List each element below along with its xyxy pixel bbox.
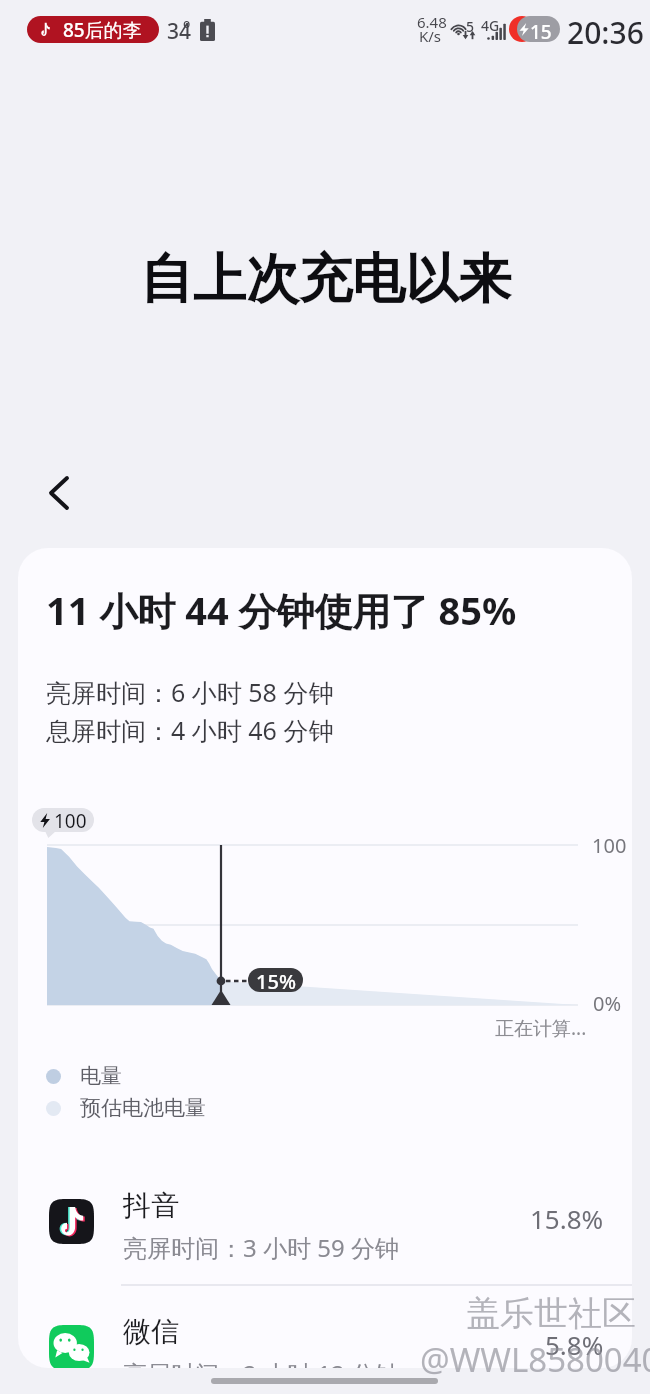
staticText: 亮屏时间：2 小时 12 分钟 (123, 1357, 399, 1368)
staticText: 11 小时 44 分钟使用了 85% (46, 584, 517, 636)
staticText: 15% (256, 968, 296, 992)
staticText: 抖音 (123, 1188, 179, 1223)
staticText: K/s (419, 26, 442, 46)
staticText: 微信 (123, 1314, 179, 1349)
staticText: 20:36 (567, 12, 644, 53)
staticText: 5.8% (545, 1327, 604, 1361)
staticText: 100 (54, 808, 87, 832)
staticText: 4G (481, 16, 500, 35)
staticText: 亮屏时间：6 小时 58 分钟 (46, 675, 334, 709)
staticText: 15 (530, 19, 552, 42)
staticText: 息屏时间：4 小时 46 分钟 (46, 713, 334, 747)
staticText: 盖乐世社区 (466, 1292, 636, 1335)
button[interactable]: Back (29, 463, 89, 523)
staticText: 正在计算... (495, 1015, 587, 1041)
staticText: 5 (466, 17, 475, 36)
staticText: 6.48 (417, 12, 447, 32)
staticText: 亮屏时间：3 小时 59 分钟 (123, 1231, 399, 1264)
staticText: 34 (167, 17, 192, 46)
staticText: 自上次充电以来 (140, 246, 511, 313)
button[interactable]: 85后的李 (38, 16, 149, 43)
staticText: 0% (593, 990, 622, 1017)
staticText: 85后的李 (63, 17, 142, 43)
staticText: 预估电池电量 (80, 1095, 206, 1121)
staticText: 100 (592, 832, 627, 859)
button[interactable]: 微信 (18, 1306, 632, 1368)
staticText: o (183, 15, 191, 31)
staticText: 电量 (80, 1063, 122, 1089)
staticText: @WWL8580040 (420, 1337, 650, 1382)
staticText: 15.8% (530, 1201, 604, 1235)
button[interactable]: 抖音 (18, 1180, 632, 1312)
